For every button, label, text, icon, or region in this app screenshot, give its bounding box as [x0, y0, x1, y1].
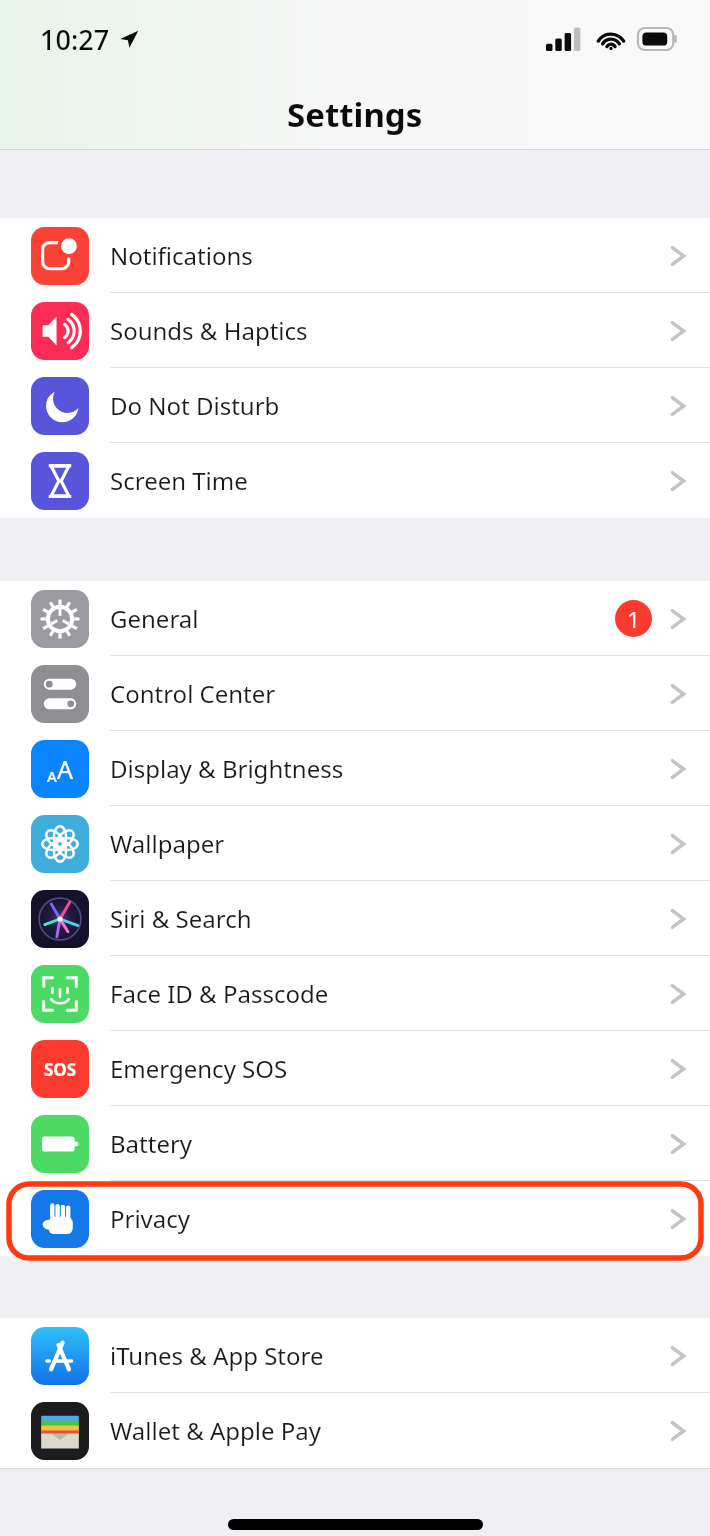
staticText: iTunes & App Store [110, 1339, 668, 1372]
staticText: Settings [287, 92, 423, 137]
button[interactable]: Notifications [0, 218, 710, 293]
button[interactable]: Wallet & Apple Pay [0, 1393, 710, 1468]
button[interactable]: Siri & Search [0, 881, 710, 956]
staticText: Battery [110, 1127, 668, 1160]
staticText: 1 [627, 604, 640, 634]
staticText: A [57, 752, 73, 786]
button[interactable]: Control Center [0, 656, 710, 731]
button[interactable]: iTunes & App Store [0, 1318, 710, 1393]
staticText: SOS [44, 1058, 77, 1081]
button[interactable]: Face ID & Passcode [0, 956, 710, 1031]
button[interactable]: Battery [0, 1106, 710, 1181]
staticText: Display & Brightness [110, 752, 668, 785]
staticText: Notifications [110, 239, 668, 272]
staticText: 10:27 [40, 21, 110, 58]
staticText: Siri & Search [110, 902, 668, 935]
staticText: Privacy [110, 1202, 668, 1235]
staticText: Wallet & Apple Pay [110, 1414, 668, 1447]
button[interactable]: Screen Time [0, 443, 710, 518]
button[interactable]: A [0, 731, 710, 806]
staticText: Screen Time [110, 464, 668, 497]
button[interactable]: Wallpaper [0, 806, 710, 881]
button[interactable]: Privacy [0, 1181, 710, 1256]
staticText: Control Center [110, 677, 668, 710]
staticText: General [110, 602, 615, 635]
staticText: Wallpaper [110, 827, 668, 860]
staticText: Do Not Disturb [110, 389, 668, 422]
staticText: Sounds & Haptics [110, 314, 668, 347]
staticText: A [47, 766, 57, 786]
button[interactable]: Do Not Disturb [0, 368, 710, 443]
staticText: Emergency SOS [110, 1052, 668, 1085]
button[interactable]: Sounds & Haptics [0, 293, 710, 368]
staticText: Face ID & Passcode [110, 977, 668, 1010]
button[interactable]: SOS [0, 1031, 710, 1106]
button[interactable]: General [0, 581, 710, 656]
